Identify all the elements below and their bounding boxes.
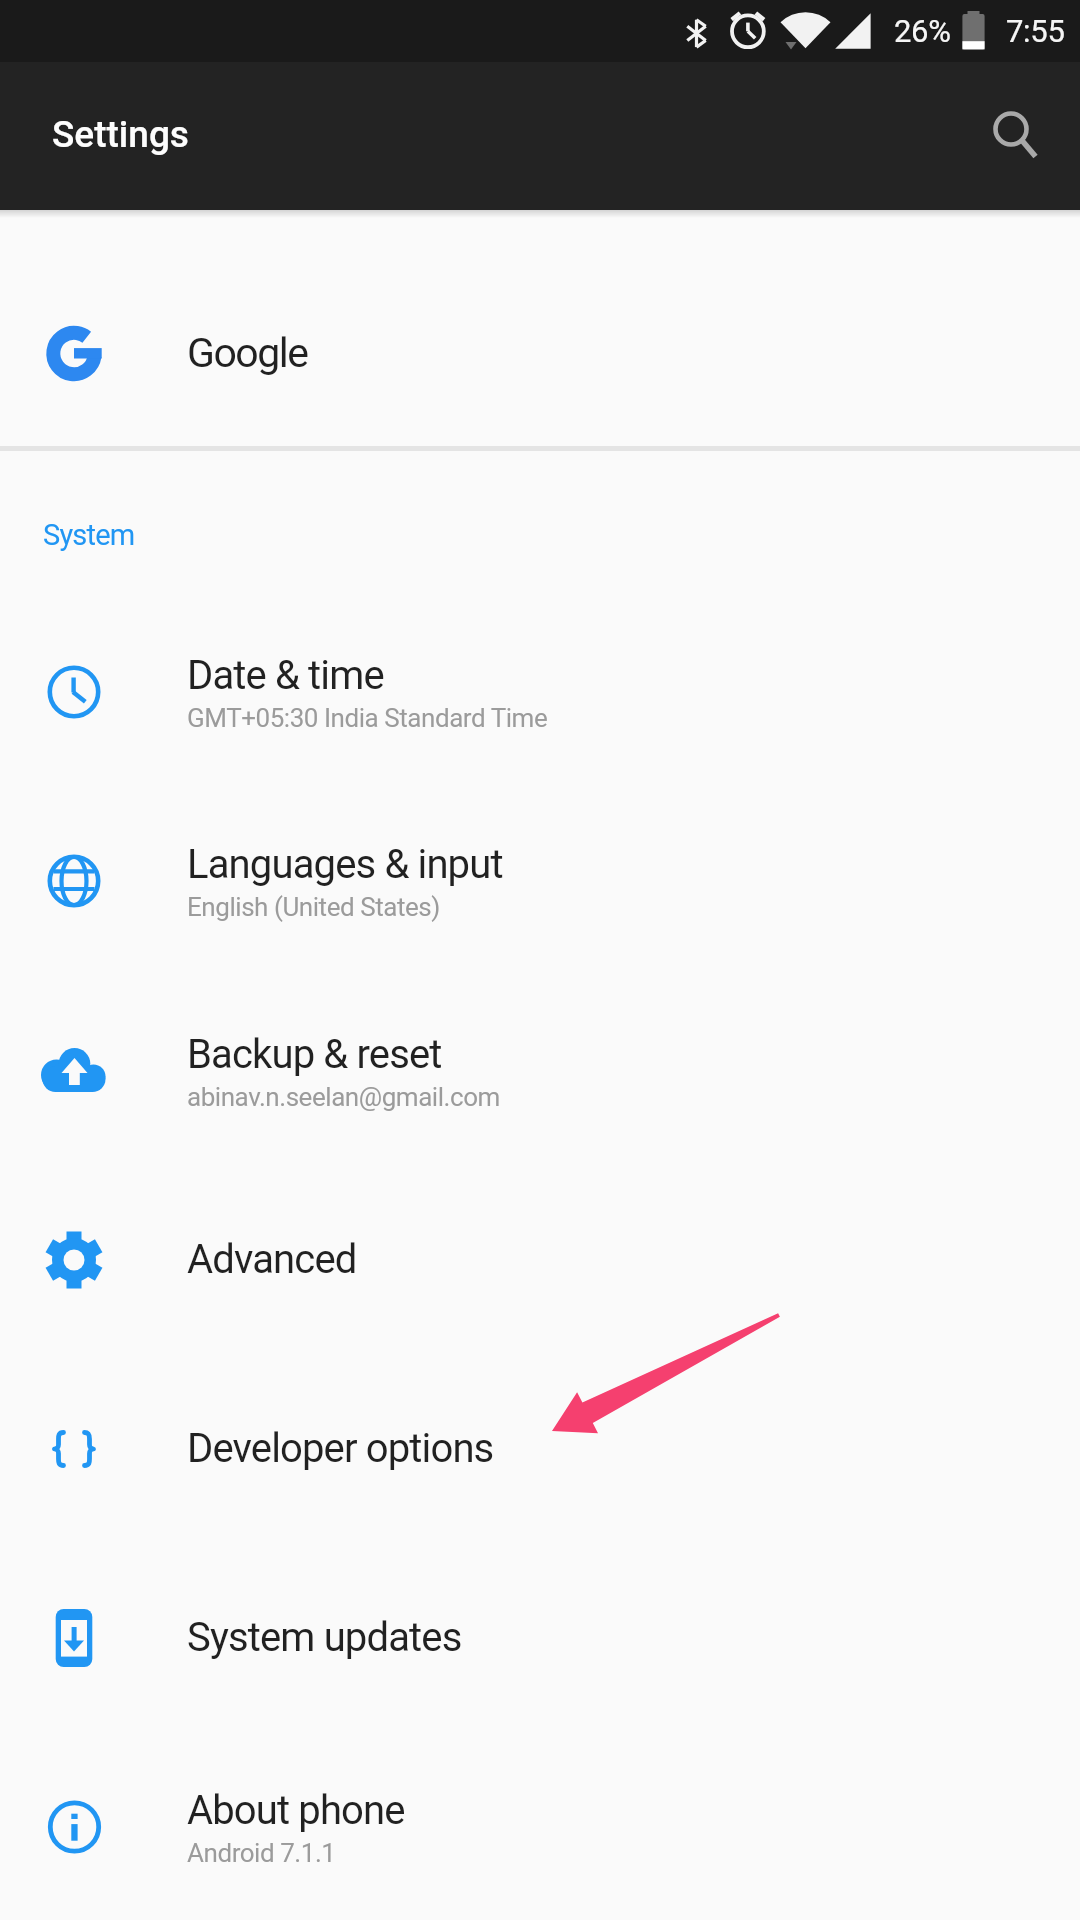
button[interactable]: About phone [0,1732,1080,1920]
button[interactable]: Date & time [0,597,1080,786]
button[interactable]: Developer options [0,1354,1080,1543]
button[interactable] [978,96,1044,162]
button[interactable]: Advanced [0,1165,1080,1354]
button[interactable]: System updates [0,1543,1080,1732]
staticText: Advanced [187,1236,357,1283]
staticText: Developer options [187,1425,494,1472]
staticText: 7:55 [1006,13,1065,49]
staticText: English (United States) [187,892,440,922]
staticText: Languages & input [187,841,503,888]
staticText: About phone [187,1787,405,1834]
button[interactable]: Languages & input [0,786,1080,975]
staticText: System [43,518,135,552]
staticText: GMT+05:30 India Standard Time [187,703,548,733]
staticText: Date & time [187,652,384,699]
staticText: System updates [187,1614,462,1661]
staticText: Android 7.1.1 [187,1838,336,1868]
staticText: Google [187,329,308,377]
button[interactable]: Backup & reset [0,976,1080,1165]
button[interactable]: Google [0,210,1080,446]
staticText: Backup & reset [187,1031,442,1078]
staticText: 26% [894,13,951,49]
staticText: Settings [52,113,189,156]
staticText: abinav.n.seelan@gmail.com [187,1082,500,1112]
